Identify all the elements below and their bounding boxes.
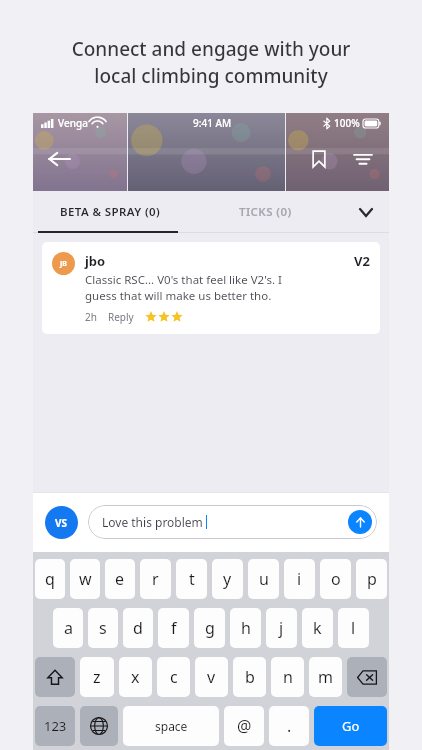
button[interactable]: s xyxy=(88,608,118,648)
staticText: 100% xyxy=(334,116,360,130)
staticText: Venga xyxy=(58,116,88,130)
staticText: . xyxy=(287,715,292,737)
staticText: 123 xyxy=(44,717,67,735)
staticText: 9:41 AM xyxy=(193,116,232,130)
staticText: f xyxy=(171,617,177,639)
button[interactable]: e xyxy=(105,559,135,599)
button[interactable]: t xyxy=(176,559,207,599)
button[interactable]: @ xyxy=(224,706,264,746)
button[interactable]: . xyxy=(269,706,309,746)
button[interactable]: g xyxy=(194,608,225,648)
button[interactable]: z xyxy=(80,657,114,697)
button[interactable]: c xyxy=(157,657,190,697)
staticText: 2h xyxy=(85,310,97,324)
button[interactable]: h xyxy=(230,608,261,648)
staticText: h xyxy=(241,617,251,639)
staticText: b xyxy=(245,666,255,688)
staticText: x xyxy=(131,666,140,688)
button[interactable]: l xyxy=(338,608,369,648)
button[interactable]: d xyxy=(123,608,153,648)
button[interactable]: Go xyxy=(314,706,387,746)
button[interactable]: Love this problem xyxy=(88,505,377,539)
button[interactable]: JB xyxy=(42,242,380,334)
staticText: VS xyxy=(55,516,68,530)
staticText: u xyxy=(259,568,269,590)
staticText: g xyxy=(205,617,215,639)
staticText: c xyxy=(170,666,178,688)
button[interactable]: i xyxy=(284,559,315,599)
staticText: k xyxy=(313,617,322,639)
button[interactable]: Bookmark xyxy=(305,145,333,173)
button[interactable]: p xyxy=(356,559,387,599)
staticText: Reply xyxy=(108,310,134,324)
button[interactable]: a xyxy=(53,608,83,648)
staticText: BETA & SPRAY (0) xyxy=(60,204,161,220)
button[interactable]: w xyxy=(70,559,100,599)
button[interactable]: TICKS (0) xyxy=(188,191,343,233)
button[interactable]: 123 xyxy=(35,706,75,746)
button[interactable]: r xyxy=(140,559,171,599)
button[interactable]: Expand xyxy=(343,191,389,233)
button[interactable]: n xyxy=(271,657,304,697)
button[interactable]: b xyxy=(233,657,266,697)
button[interactable]: o xyxy=(320,559,351,599)
staticText: p xyxy=(367,568,377,590)
staticText: jbo xyxy=(85,252,106,270)
staticText: @ xyxy=(237,715,252,737)
staticText: a xyxy=(64,617,73,639)
button[interactable]: u xyxy=(248,559,279,599)
staticText: e xyxy=(115,568,125,590)
button[interactable]: space xyxy=(123,706,219,746)
button[interactable]: VS xyxy=(45,506,78,539)
staticText: space xyxy=(155,718,188,734)
staticText: m xyxy=(318,666,333,688)
staticText: y xyxy=(223,568,232,590)
staticText: n xyxy=(283,666,293,688)
staticText: r xyxy=(152,568,159,590)
button[interactable]: j xyxy=(266,608,297,648)
button[interactable]: Change keyboard xyxy=(80,706,118,746)
staticText: d xyxy=(133,617,143,639)
staticText: JB xyxy=(60,259,67,269)
button[interactable]: q xyxy=(35,559,65,599)
button[interactable]: Backspace xyxy=(347,657,387,697)
button[interactable]: Filter xyxy=(349,145,377,173)
staticText: s xyxy=(99,617,107,639)
button[interactable]: x xyxy=(119,657,152,697)
button[interactable]: m xyxy=(309,657,342,697)
staticText: TICKS (0) xyxy=(239,204,292,220)
staticText: w xyxy=(79,568,92,590)
button[interactable]: Reply xyxy=(108,310,134,324)
staticText: o xyxy=(331,568,341,590)
button[interactable]: f xyxy=(158,608,189,648)
staticText: Love this problem xyxy=(102,514,206,530)
staticText: Connect and engage with your local climb… xyxy=(20,36,402,89)
staticText: Go xyxy=(342,717,360,735)
button[interactable]: y xyxy=(212,559,243,599)
button[interactable]: k xyxy=(302,608,333,648)
button[interactable]: BETA & SPRAY (0) xyxy=(33,191,188,233)
staticText: q xyxy=(45,568,55,590)
button[interactable]: Send xyxy=(348,510,372,534)
staticText: v xyxy=(207,666,216,688)
staticText: t xyxy=(189,568,195,590)
staticText: l xyxy=(351,617,356,639)
staticText: Classic RSC... V0's that feel like V2's.… xyxy=(85,272,282,303)
staticText: z xyxy=(93,666,101,688)
button[interactable]: Shift xyxy=(35,657,75,697)
button[interactable]: Back xyxy=(43,143,75,175)
staticText: j xyxy=(279,617,284,639)
button[interactable]: v xyxy=(195,657,228,697)
staticText: i xyxy=(297,568,302,590)
staticText: V2 xyxy=(354,252,370,270)
